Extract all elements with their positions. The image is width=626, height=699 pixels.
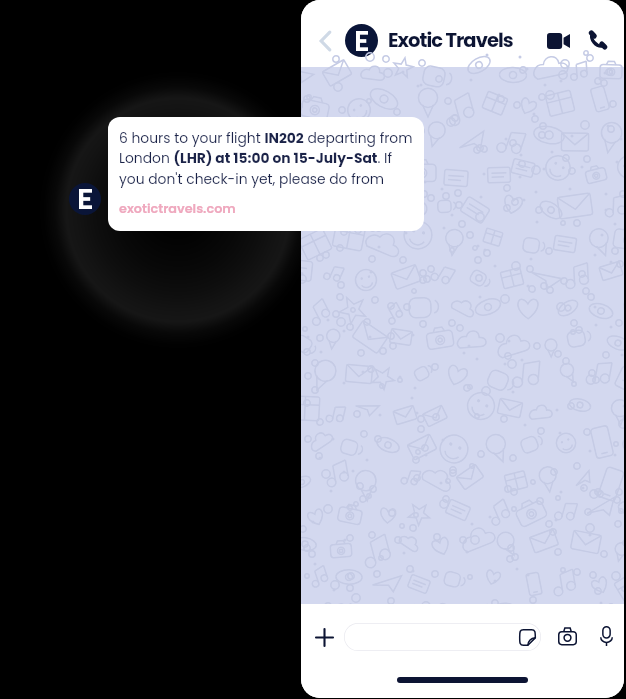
button[interactable] xyxy=(344,623,541,651)
button[interactable]: Voice call xyxy=(581,23,614,56)
staticText: exotictravels.com xyxy=(119,200,236,218)
button[interactable]: Exotic Travels xyxy=(345,24,513,57)
staticText: Exotic Travels xyxy=(388,27,513,54)
button[interactable]: 6 hours to your flight IN202 departing f… xyxy=(108,117,424,231)
button[interactable]: Back xyxy=(310,20,340,61)
staticText: 6 hours to your flight IN202 departing f… xyxy=(119,128,413,189)
button[interactable]: Attach xyxy=(309,622,340,653)
button[interactable]: Video call xyxy=(542,24,575,57)
button[interactable]: Voice message xyxy=(590,620,622,652)
button[interactable]: Camera xyxy=(551,620,583,652)
